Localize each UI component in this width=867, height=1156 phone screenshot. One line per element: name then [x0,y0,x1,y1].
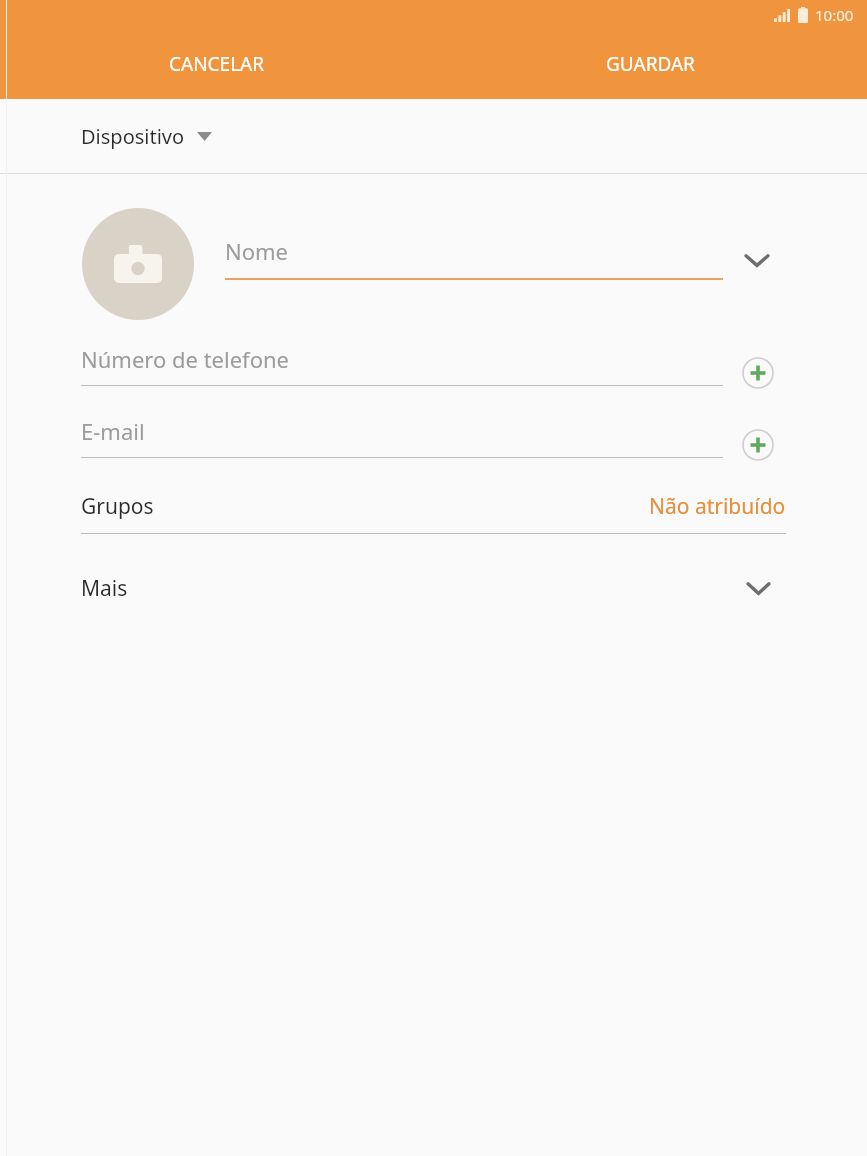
button[interactable]: GUARDAR [433,29,867,99]
button[interactable]: Nome [225,236,723,280]
button[interactable]: Add photo [82,208,194,320]
button[interactable]: Mais [0,563,867,613]
staticText: 10:00 [815,5,854,25]
staticText: GUARDAR [606,51,695,77]
staticText: Mais [81,574,128,603]
staticText: Nome [225,236,289,266]
button[interactable]: CANCELAR [0,29,433,99]
staticText: Não atribuído [649,492,786,521]
staticText: Número de telefone [81,344,289,374]
button[interactable]: Expand name fields [735,238,779,282]
staticText: Grupos [81,492,154,521]
staticText: Dispositivo [81,123,185,150]
staticText: CANCELAR [169,51,265,77]
button[interactable]: Número de telefone [81,344,723,386]
button[interactable]: Add phone number [736,351,780,395]
staticText: E-mail [81,416,145,446]
button[interactable]: Grupos [81,492,786,534]
button[interactable]: Add email [736,423,780,467]
button[interactable]: E-mail [81,416,723,458]
button[interactable]: Dispositivo [0,99,867,173]
